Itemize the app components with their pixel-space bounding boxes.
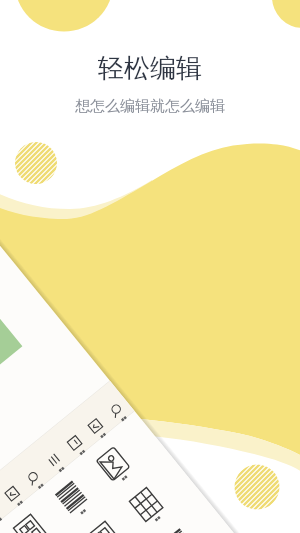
staticText: 想怎么编辑就怎么编辑 — [75, 97, 225, 116]
staticText: 轻松编辑 — [98, 52, 202, 85]
